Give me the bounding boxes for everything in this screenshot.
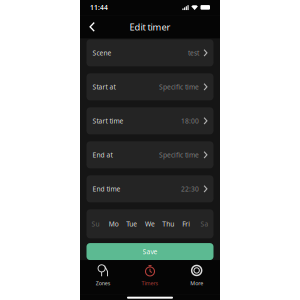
- button[interactable]: Save: [86, 243, 213, 260]
- staticText: Thu: [162, 219, 174, 228]
- staticText: More: [190, 280, 203, 287]
- button[interactable]: Sa: [195, 209, 213, 238]
- staticText: Sa: [200, 219, 208, 228]
- staticText: Specific time: [159, 82, 199, 91]
- staticText: Start at: [92, 82, 115, 91]
- button[interactable]: Mo: [105, 209, 123, 238]
- button[interactable]: Zones: [80, 264, 127, 287]
- button[interactable]: We: [141, 209, 159, 238]
- staticText: Fri: [182, 219, 190, 228]
- staticText: 18:00: [181, 116, 199, 125]
- staticText: Timers: [141, 280, 158, 287]
- button[interactable]: More: [173, 264, 220, 287]
- button[interactable]: Scene: [86, 39, 213, 66]
- staticText: Tue: [126, 219, 137, 228]
- staticText: test: [188, 48, 199, 57]
- button[interactable]: Timers: [127, 264, 173, 287]
- staticText: We: [145, 219, 155, 228]
- button[interactable]: End at: [86, 141, 213, 168]
- button[interactable]: Tue: [123, 209, 141, 238]
- button[interactable]: Fri: [177, 209, 195, 238]
- staticText: End at: [92, 150, 112, 159]
- button[interactable]: Thu: [159, 209, 177, 238]
- staticText: Scene: [92, 48, 111, 57]
- staticText: Save: [142, 247, 157, 256]
- staticText: 11:44: [90, 3, 108, 12]
- staticText: Mo: [109, 219, 119, 228]
- button[interactable]: End time: [86, 175, 213, 202]
- staticText: Su: [92, 219, 100, 228]
- staticText: 22:30: [181, 184, 199, 193]
- button[interactable]: Start time: [86, 107, 213, 134]
- staticText: End time: [92, 184, 120, 193]
- button[interactable]: Start at: [86, 73, 213, 100]
- staticText: Specific time: [159, 150, 199, 159]
- button[interactable]: Su: [86, 209, 105, 238]
- staticText: Edit timer: [129, 21, 170, 33]
- button[interactable]: Back: [85, 18, 99, 36]
- staticText: Zones: [96, 280, 111, 287]
- staticText: Start time: [92, 116, 123, 125]
